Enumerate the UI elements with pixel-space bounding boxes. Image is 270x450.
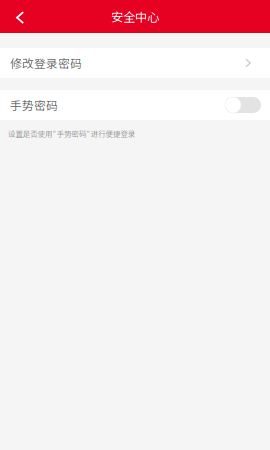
button[interactable]: 返回 (0, 0, 40, 33)
staticText: 设置是否使用"手势密码"进行便捷登录 (8, 128, 135, 139)
button[interactable]: 手势密码 (225, 97, 261, 113)
staticText: 手势密码 (10, 96, 58, 113)
staticText: 修改登录密码 (10, 54, 82, 71)
button[interactable]: 修改登录密码 (0, 48, 270, 78)
staticText: 安全中心 (111, 8, 159, 25)
